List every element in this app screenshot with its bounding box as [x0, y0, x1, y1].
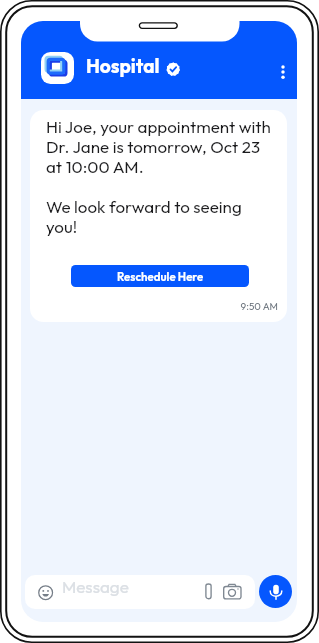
- button[interactable]: Hospital profile: [41, 52, 74, 84]
- staticText: Message: [62, 576, 129, 597]
- button[interactable]: Camera: [223, 582, 242, 600]
- staticText: Hi Joe, your appointment with Dr. Jane i…: [46, 116, 271, 238]
- button[interactable]: Reschedule Here: [71, 265, 249, 287]
- button[interactable]: Message: [25, 575, 255, 609]
- button[interactable]: Record voice message: [259, 575, 292, 608]
- staticText: Hospital: [86, 54, 160, 78]
- staticText: Reschedule Here: [117, 269, 204, 283]
- staticText: 9:50 AM: [30, 300, 278, 313]
- button[interactable]: Attach file: [202, 582, 215, 602]
- button[interactable]: More options: [272, 56, 294, 78]
